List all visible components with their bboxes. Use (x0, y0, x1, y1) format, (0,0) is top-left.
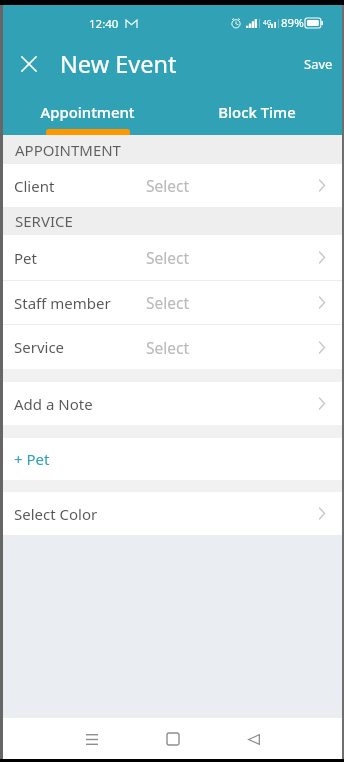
button[interactable]: Back (234, 720, 274, 758)
staticText: 4G (263, 18, 272, 27)
staticText: Select Color (14, 504, 98, 524)
staticText: Staff member (14, 293, 111, 313)
staticText: Client (14, 176, 55, 196)
staticText: New Event (60, 48, 177, 80)
button[interactable]: Save (295, 47, 342, 81)
staticText: 89% (281, 15, 304, 31)
staticText: Block Time (218, 102, 296, 122)
staticText: Pet (14, 248, 37, 268)
staticText: Save (304, 55, 333, 73)
staticText: Select (146, 292, 190, 313)
staticText: SERVICE (15, 211, 73, 231)
staticText: Select (146, 247, 190, 268)
staticText: Select (146, 175, 190, 196)
button[interactable]: Block Time (172, 90, 342, 135)
staticText: Appointment (40, 102, 135, 122)
button[interactable]: Pet (3, 235, 342, 280)
button[interactable]: Appointment (3, 90, 172, 135)
staticText: 12:40 (89, 16, 119, 32)
button[interactable]: Select Color (3, 492, 342, 535)
button[interactable]: Menu (72, 720, 112, 758)
staticText: Select (146, 337, 190, 358)
button[interactable]: Service (3, 325, 342, 369)
staticText: + Pet (14, 449, 50, 469)
staticText: Add a Note (14, 394, 93, 414)
button[interactable]: Add a Note (3, 382, 342, 425)
button[interactable]: Client (3, 164, 342, 207)
button[interactable]: Staff member (3, 281, 342, 324)
staticText: APPOINTMENT (15, 140, 121, 160)
button[interactable]: Close (11, 46, 47, 82)
staticText: Service (14, 337, 65, 357)
button[interactable]: + Pet (3, 438, 342, 480)
button[interactable]: Home (153, 720, 193, 758)
